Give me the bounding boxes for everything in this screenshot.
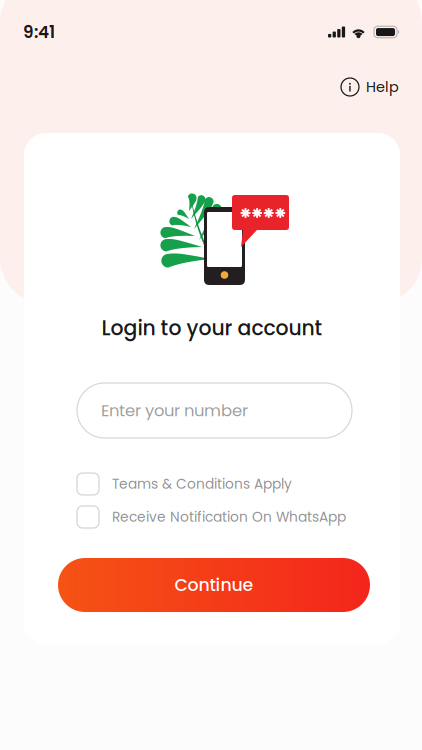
- staticText: Help: [366, 77, 399, 97]
- staticText: Login to your account: [101, 314, 322, 342]
- staticText: Enter your number: [101, 399, 248, 422]
- staticText: 9:41: [23, 20, 55, 44]
- button[interactable]: Receive Notification On WhatsApp: [77, 506, 353, 528]
- button[interactable]: Continue: [58, 558, 370, 612]
- staticText: Continue: [174, 573, 253, 597]
- button[interactable]: Teams & Conditions Apply: [77, 473, 353, 495]
- staticText: Teams & Conditions Apply: [112, 474, 292, 494]
- staticText: Receive Notification On WhatsApp: [112, 507, 346, 527]
- button[interactable]: Help: [341, 76, 399, 98]
